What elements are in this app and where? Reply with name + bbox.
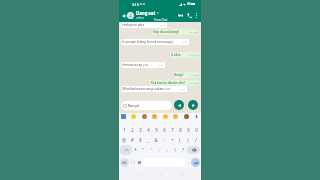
button[interactable]: Emoji <box>142 114 147 119</box>
button[interactable]: & <box>152 135 160 144</box>
button[interactable]: 1 <box>120 125 128 135</box>
staticText: 4:17 <box>190 82 195 85</box>
staticText: Lu pergan bilang Semuk sema pagi j <box>122 40 174 44</box>
staticText: G alise <box>171 53 181 57</box>
button[interactable]: ; <box>163 144 171 156</box>
button[interactable]: 6 <box>160 125 168 135</box>
button[interactable]: Sticker keyboard <box>121 114 126 119</box>
staticText: Press Chat <box>154 18 168 22</box>
button[interactable]: _ <box>144 135 152 144</box>
button[interactable]: Kok bau ho dibuka ofm? <box>150 80 199 86</box>
button[interactable]: ! <box>171 144 179 156</box>
staticText: / <box>195 137 197 143</box>
button[interactable]: 0 <box>192 125 200 135</box>
button[interactable]: Back <box>135 171 141 177</box>
button[interactable]: Bangtt <box>173 72 199 78</box>
button[interactable]: 3 <box>136 125 144 135</box>
staticText: " <box>142 147 144 153</box>
button[interactable]: $ <box>136 135 144 144</box>
button[interactable]: chemoura kep j ca <box>121 62 165 68</box>
button[interactable]: 5 <box>152 125 160 135</box>
button[interactable]: ' <box>147 144 155 156</box>
staticText: Bangtt <box>174 73 184 77</box>
staticText: ( <box>179 137 181 143</box>
staticText: 4:17 <box>183 41 188 44</box>
button[interactable]: Emoji <box>184 114 189 119</box>
button[interactable]: 4 <box>144 125 152 135</box>
staticText: 4:17 <box>181 88 186 91</box>
staticText: 6 <box>163 127 166 133</box>
button[interactable]: ABC <box>120 158 129 167</box>
staticText: 8 <box>179 127 182 133</box>
staticText: 4:17 <box>190 31 195 34</box>
button[interactable]: Emoji <box>131 114 136 119</box>
button[interactable]: Grid <box>137 160 142 165</box>
button[interactable]: OffenSadva semuanya yukasn t cu <box>121 86 187 92</box>
button[interactable]: Lu pergan bilang Semuk sema pagi j <box>121 39 189 45</box>
staticText: ) <box>187 137 189 143</box>
button[interactable]: Kisp dikurul bang? <box>152 29 199 35</box>
button[interactable]: Emoji <box>163 114 168 119</box>
button[interactable]: * <box>132 144 139 156</box>
staticText: 4 <box>147 127 150 133</box>
staticText: 46 <box>187 2 191 6</box>
staticText: 3 <box>139 127 142 133</box>
button[interactable]: Back <box>120 12 127 19</box>
button[interactable]: - <box>160 135 168 144</box>
staticText: ? <box>182 147 184 153</box>
staticText: & <box>154 137 158 143</box>
staticText: _ <box>147 137 149 143</box>
staticText: ! <box>174 147 176 153</box>
button[interactable]: 2 <box>128 125 136 135</box>
staticText: ; <box>166 147 168 153</box>
button[interactable]: G alise <box>170 52 199 58</box>
staticText: Dang sat <box>136 10 156 16</box>
staticText: - <box>163 137 165 143</box>
button[interactable]: / <box>192 135 200 144</box>
button[interactable]: Send <box>188 100 198 110</box>
button[interactable]: Emoji <box>152 114 157 119</box>
staticText: @ <box>122 137 126 143</box>
button[interactable]: Voice input <box>194 114 199 119</box>
button[interactable]: ohehgooci pdta <box>121 22 167 28</box>
staticText: 7 <box>171 127 174 133</box>
staticText: # <box>131 137 134 143</box>
staticText: $ <box>139 137 142 143</box>
button[interactable]: + <box>168 135 176 144</box>
button[interactable]: Bangtt <box>121 101 172 110</box>
staticText: =\< <box>124 148 129 152</box>
button[interactable]: ( <box>176 135 184 144</box>
button[interactable]: . <box>186 160 191 165</box>
staticText: 4:17 <box>190 54 195 57</box>
button[interactable]: More options <box>194 13 199 18</box>
button[interactable]: Emoji <box>173 114 178 119</box>
staticText: 9 <box>187 127 190 133</box>
staticText: 4:18 <box>132 2 139 7</box>
button[interactable]: 8 <box>176 125 184 135</box>
staticText: * <box>134 147 137 153</box>
button[interactable]: ) <box>184 135 192 144</box>
button[interactable]: =\< <box>120 145 132 155</box>
button[interactable]: Recents <box>179 171 185 177</box>
staticText: online <box>136 16 145 20</box>
button[interactable]: Call <box>186 12 193 19</box>
staticText: ABC <box>122 161 127 165</box>
button[interactable]: # <box>128 135 136 144</box>
staticText: OffenSadva semuanya yukasn t cu <box>122 87 171 91</box>
button[interactable]: Backspace <box>187 146 200 154</box>
button[interactable]: @ <box>120 135 128 144</box>
button[interactable]: ? <box>179 144 187 156</box>
button[interactable]: : <box>155 144 163 156</box>
button[interactable]: Home <box>157 171 163 177</box>
staticText: Bangtt <box>128 103 140 108</box>
button[interactable]: Previous <box>174 100 184 110</box>
button[interactable]: Video call <box>177 12 184 19</box>
button[interactable]: Emoji <box>130 159 136 165</box>
button[interactable]: " <box>139 144 147 156</box>
button[interactable]: 7 <box>168 125 176 135</box>
staticText: 2 <box>131 127 134 133</box>
staticText: 4:17 <box>159 64 164 67</box>
button[interactable]: Enter <box>191 158 200 167</box>
button[interactable]: 9 <box>184 125 192 135</box>
